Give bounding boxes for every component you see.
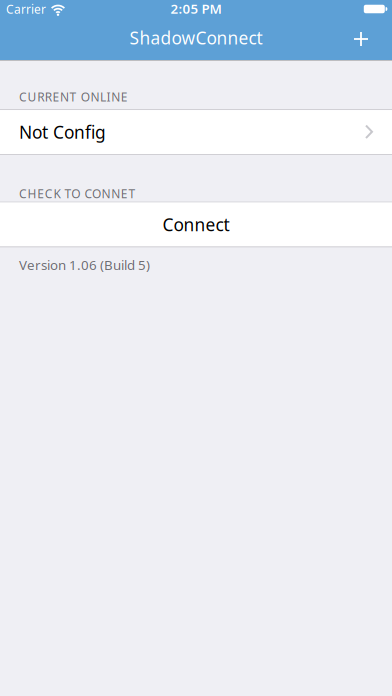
- staticText: CHECK TO CONNET: [19, 185, 135, 201]
- staticText: Not Config: [19, 120, 106, 143]
- staticText: Connect: [162, 213, 229, 236]
- staticText: Version 1.06 (Build 5): [19, 256, 150, 274]
- staticText: ShadowConnect: [129, 26, 262, 49]
- staticText: 2:05 PM: [170, 0, 221, 17]
- button[interactable]: Not Config: [0, 110, 392, 154]
- staticText: CURRENT ONLINE: [19, 89, 128, 105]
- button[interactable]: [342, 20, 392, 58]
- staticText: Carrier: [6, 1, 46, 17]
- button[interactable]: Connect: [0, 202, 392, 246]
